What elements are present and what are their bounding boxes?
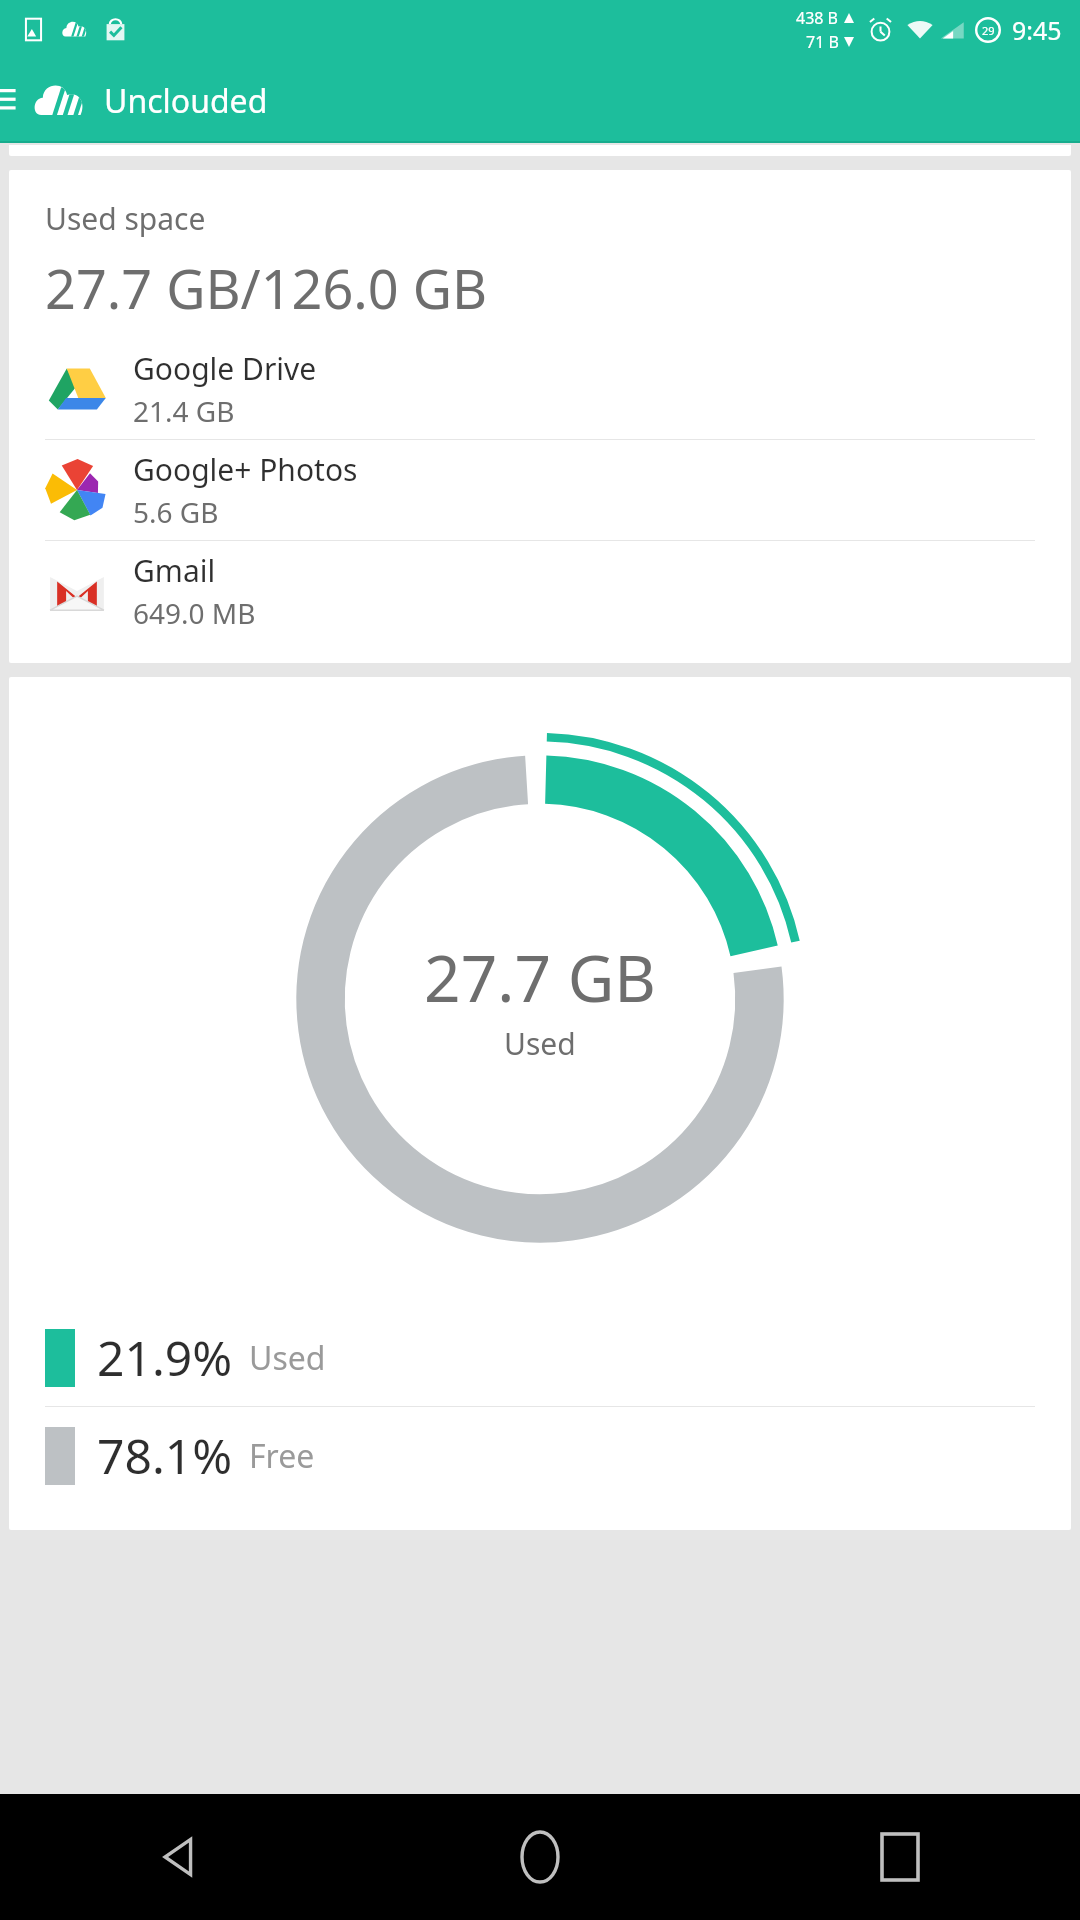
button[interactable]: Google+ Photos	[9, 440, 1071, 540]
button[interactable]: 21.9%	[9, 1309, 1071, 1406]
staticText: 78.1%	[97, 1423, 233, 1488]
staticText: Unclouded	[104, 79, 268, 123]
button[interactable]: Home	[360, 1794, 720, 1920]
staticText: 21.9%	[97, 1325, 233, 1390]
staticText: Google Drive	[133, 348, 317, 389]
button[interactable]: 78.1%	[9, 1407, 1071, 1504]
staticText: 29	[982, 23, 995, 38]
button[interactable]: Gmail	[9, 541, 1071, 641]
staticText: 649.0 MB	[133, 594, 256, 632]
staticText: 27.7 GB	[424, 934, 656, 1021]
staticText: 9:45	[1012, 13, 1062, 47]
staticText: Gmail	[133, 550, 216, 591]
button[interactable]: Open navigation drawer	[0, 59, 26, 143]
staticText: 5.6 GB	[133, 493, 219, 531]
staticText: Used	[504, 1023, 576, 1064]
staticText: 71 B	[806, 31, 839, 53]
staticText: Used space	[45, 198, 206, 239]
staticText: Used	[249, 1336, 326, 1380]
staticText: Free	[249, 1434, 315, 1478]
staticText: 27.7 GB/126.0 GB	[45, 251, 488, 325]
button[interactable]: Back	[0, 1794, 360, 1920]
staticText: 21.4 GB	[133, 392, 235, 430]
button[interactable]: Google Drive	[9, 339, 1071, 439]
staticText: 438 B	[796, 7, 839, 29]
staticText: Google+ Photos	[133, 449, 358, 490]
button[interactable]: Recent apps	[720, 1794, 1080, 1920]
